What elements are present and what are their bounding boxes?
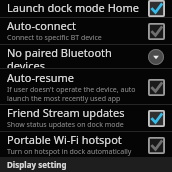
button[interactable]: Portable Wi-Fi hotspot bbox=[0, 132, 172, 157]
staticText: If user doesn't operate the device, auto… bbox=[7, 85, 142, 103]
button[interactable]: Launch dock mode Home in dock automatica… bbox=[146, 0, 166, 17]
staticText: No paired Bluetooth devices bbox=[7, 45, 142, 68]
staticText: Connect to specific BT device automatica… bbox=[7, 33, 142, 44]
button[interactable]: Choose Bluetooth device bbox=[146, 47, 166, 67]
button[interactable]: Auto-connect bbox=[146, 21, 166, 41]
button[interactable]: No paired Bluetooth devices bbox=[0, 45, 172, 68]
button[interactable]: Launch dock mode Home in dock bbox=[0, 0, 172, 17]
button[interactable]: Portable Wi-Fi hotspot bbox=[146, 135, 166, 155]
staticText: Friend Stream updates bbox=[7, 105, 125, 120]
staticText: Turn on hotspot in dock automatically bbox=[7, 147, 132, 157]
button[interactable]: Friend Stream updates bbox=[146, 108, 166, 128]
staticText: Launch dock mode Home in dock bbox=[7, 0, 142, 17]
button[interactable]: Friend Stream updates bbox=[0, 105, 172, 131]
button[interactable]: Auto-resume bbox=[146, 77, 166, 97]
button[interactable]: Auto-connect bbox=[0, 18, 172, 44]
staticText: Auto-connect bbox=[7, 18, 76, 33]
staticText: Display setting bbox=[7, 159, 67, 170]
button[interactable]: Auto-resume bbox=[0, 69, 172, 104]
staticText: Show status updates on dock mode Home bbox=[7, 120, 142, 131]
staticText: Auto-resume bbox=[7, 70, 75, 85]
staticText: Portable Wi-Fi hotspot bbox=[7, 132, 122, 147]
